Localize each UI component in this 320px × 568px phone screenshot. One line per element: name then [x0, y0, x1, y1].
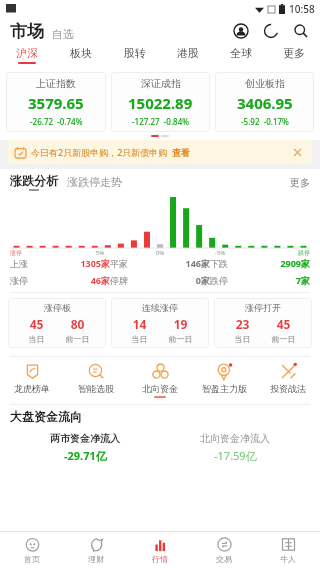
staticText: 查看 — [172, 147, 190, 158]
button[interactable]: Night mode — [260, 20, 282, 42]
staticText: 市场 — [10, 21, 44, 42]
staticText: 平家 — [110, 258, 128, 269]
staticText: 更多 — [283, 46, 305, 60]
staticText: 深证成指 — [141, 77, 181, 90]
staticText: 大盘资金流向 — [10, 409, 82, 424]
staticText: 45 — [16, 316, 57, 332]
staticText: 涨停板 — [44, 302, 71, 313]
staticText: 23 — [222, 316, 263, 332]
staticText: 19 — [160, 316, 201, 332]
button[interactable]: 更多 — [267, 44, 320, 66]
button[interactable]: 连续涨停 — [111, 298, 209, 348]
staticText: 今日有2只新股申购，2只新债申购 — [31, 146, 168, 158]
staticText: 5% — [70, 249, 130, 257]
button[interactable]: 龙虎榜单 — [0, 363, 64, 398]
button[interactable]: 今日有2只新股申购，2只新债申购 — [8, 140, 312, 164]
staticText: 创业板指 — [245, 77, 285, 90]
staticText: 0家 — [128, 274, 210, 286]
staticText: 首页 — [24, 554, 40, 564]
button[interactable]: 首页 — [0, 532, 64, 568]
staticText: 2909家 — [228, 257, 310, 269]
staticText: 前一日 — [57, 334, 98, 344]
staticText: 3579.65 — [28, 93, 84, 113]
staticText: 45 — [263, 316, 304, 332]
staticText: 两市资金净流入 — [50, 432, 120, 445]
button[interactable]: 沪深 — [0, 44, 54, 66]
staticText: 交易 — [216, 554, 232, 564]
button[interactable]: 智盈主力版 — [192, 363, 256, 398]
staticText: 投资战法 — [270, 383, 306, 394]
staticText: 1305家 — [28, 257, 110, 269]
staticText: 0% — [130, 249, 190, 257]
staticText: 行情 — [152, 554, 168, 564]
staticText: 46家 — [28, 274, 110, 286]
button[interactable]: 北向资金净流入 — [160, 432, 310, 463]
staticText: 连续涨停 — [142, 302, 178, 313]
button[interactable]: 股转 — [108, 44, 161, 66]
staticText: 跌停 — [210, 275, 228, 286]
staticText: -5.92 -0.17% — [241, 116, 289, 127]
staticText: -26.72 -0.74% — [30, 116, 83, 127]
staticText: 板块 — [70, 46, 92, 60]
staticText: 下跌 — [210, 258, 228, 269]
staticText: 沪深 — [16, 46, 38, 60]
button[interactable]: 北向资金 — [128, 363, 192, 398]
staticText: 15022.89 — [128, 93, 193, 113]
button[interactable]: 更多 — [290, 176, 310, 189]
staticText: 跌停 — [250, 249, 310, 257]
staticText: 80 — [57, 316, 98, 332]
button[interactable]: 港股 — [161, 44, 214, 66]
staticText: 涨跌分析 — [10, 173, 58, 188]
button[interactable]: 板块 — [54, 44, 108, 66]
staticText: 全球 — [230, 46, 252, 60]
button[interactable]: Close — [290, 145, 304, 159]
staticText: 牛人 — [280, 554, 296, 564]
staticText: 上证指数 — [36, 77, 76, 90]
button[interactable]: 两市资金净流入 — [10, 432, 160, 463]
staticText: 智盈主力版 — [202, 383, 247, 394]
button[interactable]: 牛人 — [256, 532, 320, 568]
staticText: 当日 — [119, 334, 160, 344]
staticText: 上涨 — [10, 258, 28, 269]
button[interactable]: Search — [290, 20, 312, 42]
button[interactable]: 理财 — [64, 532, 128, 568]
staticText: 7家 — [228, 274, 310, 286]
staticText: 股转 — [124, 46, 146, 60]
button[interactable]: Profile — [230, 20, 252, 42]
staticText: 涨停 — [10, 249, 70, 257]
staticText: -127.27 -0.84% — [132, 116, 190, 127]
staticText: 当日 — [16, 334, 57, 344]
staticText: 智能选股 — [78, 383, 114, 394]
staticText: 14 — [119, 316, 160, 332]
button[interactable]: 涨停打开 — [214, 298, 312, 348]
staticText: 3406.95 — [237, 93, 293, 113]
button[interactable]: 行情 — [128, 532, 192, 568]
button[interactable]: 交易 — [192, 532, 256, 568]
button[interactable]: 涨跌分析 — [10, 173, 58, 191]
staticText: 北向资金净流入 — [200, 432, 270, 445]
staticText: 北向资金 — [142, 383, 178, 394]
staticText: 自选 — [52, 27, 74, 41]
staticText: 涨停打开 — [245, 302, 281, 313]
staticText: 涨停 — [10, 275, 28, 286]
staticText: 理财 — [88, 554, 104, 564]
staticText: 龙虎榜单 — [14, 383, 50, 394]
button[interactable]: 智能选股 — [64, 363, 128, 398]
staticText: 前一日 — [160, 334, 201, 344]
button[interactable]: 上证指数 — [6, 72, 106, 132]
staticText: -17.59亿 — [214, 448, 257, 463]
staticText: 停牌 — [110, 275, 128, 286]
staticText: 前一日 — [263, 334, 304, 344]
staticText: -5% — [190, 249, 250, 257]
button[interactable]: 涨跌停走势 — [67, 175, 122, 189]
staticText: 146家 — [128, 257, 210, 269]
button[interactable]: 创业板指 — [215, 72, 314, 132]
staticText: 港股 — [177, 46, 199, 60]
staticText: -29.71亿 — [64, 448, 107, 463]
button[interactable]: 深证成指 — [111, 72, 210, 132]
button[interactable]: 涨停板 — [8, 298, 106, 348]
button[interactable]: 全球 — [214, 44, 267, 66]
button[interactable]: 投资战法 — [256, 363, 320, 398]
staticText: 当日 — [222, 334, 263, 344]
staticText: 10:58 — [289, 2, 315, 16]
